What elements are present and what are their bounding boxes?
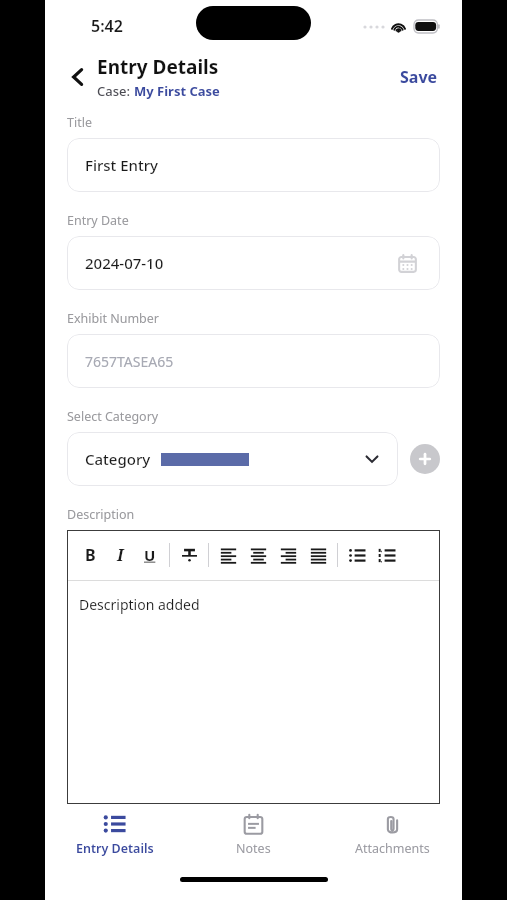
staticText: Entry Date bbox=[67, 212, 129, 229]
button[interactable]: First Entry bbox=[67, 138, 440, 192]
button[interactable]: Pick date bbox=[392, 248, 422, 278]
staticText: U bbox=[144, 545, 156, 565]
button[interactable]: Underline bbox=[135, 537, 165, 573]
staticText: First Entry bbox=[85, 155, 159, 175]
staticText: I bbox=[117, 544, 124, 566]
button[interactable]: Back bbox=[63, 62, 93, 92]
button[interactable]: Align center bbox=[243, 537, 273, 573]
staticText: Save bbox=[400, 66, 438, 88]
button[interactable]: Align right bbox=[273, 537, 303, 573]
staticText: 5:42 bbox=[91, 15, 123, 37]
button[interactable]: Add category bbox=[410, 444, 440, 474]
staticText: Notes bbox=[236, 840, 271, 857]
staticText: B bbox=[85, 544, 96, 566]
button[interactable]: Numbered list bbox=[372, 537, 402, 573]
button[interactable]: 2024-07-10 bbox=[67, 236, 440, 290]
staticText: Title bbox=[67, 114, 92, 131]
staticText: Description added bbox=[79, 595, 200, 614]
staticText: Attachments bbox=[355, 840, 430, 857]
button[interactable]: Entry Details bbox=[45, 804, 184, 866]
button[interactable]: Align left bbox=[213, 537, 243, 573]
button[interactable]: Bulleted list bbox=[342, 537, 372, 573]
staticText: 7657TASEA65 bbox=[85, 352, 174, 371]
button[interactable]: Save bbox=[394, 60, 444, 94]
staticText: Select Category bbox=[67, 408, 159, 425]
staticText: Entry Details bbox=[97, 54, 219, 80]
button[interactable]: Justify bbox=[303, 537, 333, 573]
staticText: Entry Details bbox=[76, 840, 154, 857]
button[interactable]: 7657TASEA65 bbox=[67, 334, 440, 388]
staticText: Case: bbox=[97, 82, 134, 100]
button[interactable]: Italic bbox=[105, 537, 135, 573]
staticText: Category bbox=[85, 449, 151, 469]
button[interactable]: My First Case bbox=[134, 82, 220, 100]
button[interactable]: Strikethrough bbox=[174, 537, 204, 573]
button[interactable]: Attachments bbox=[323, 804, 462, 866]
staticText: 2024-07-10 bbox=[85, 253, 164, 273]
staticText: Exhibit Number bbox=[67, 310, 160, 327]
staticText: Description bbox=[67, 506, 135, 523]
button[interactable]: B bbox=[75, 537, 105, 573]
button[interactable]: Notes bbox=[184, 804, 323, 866]
button[interactable]: Category bbox=[67, 432, 398, 486]
